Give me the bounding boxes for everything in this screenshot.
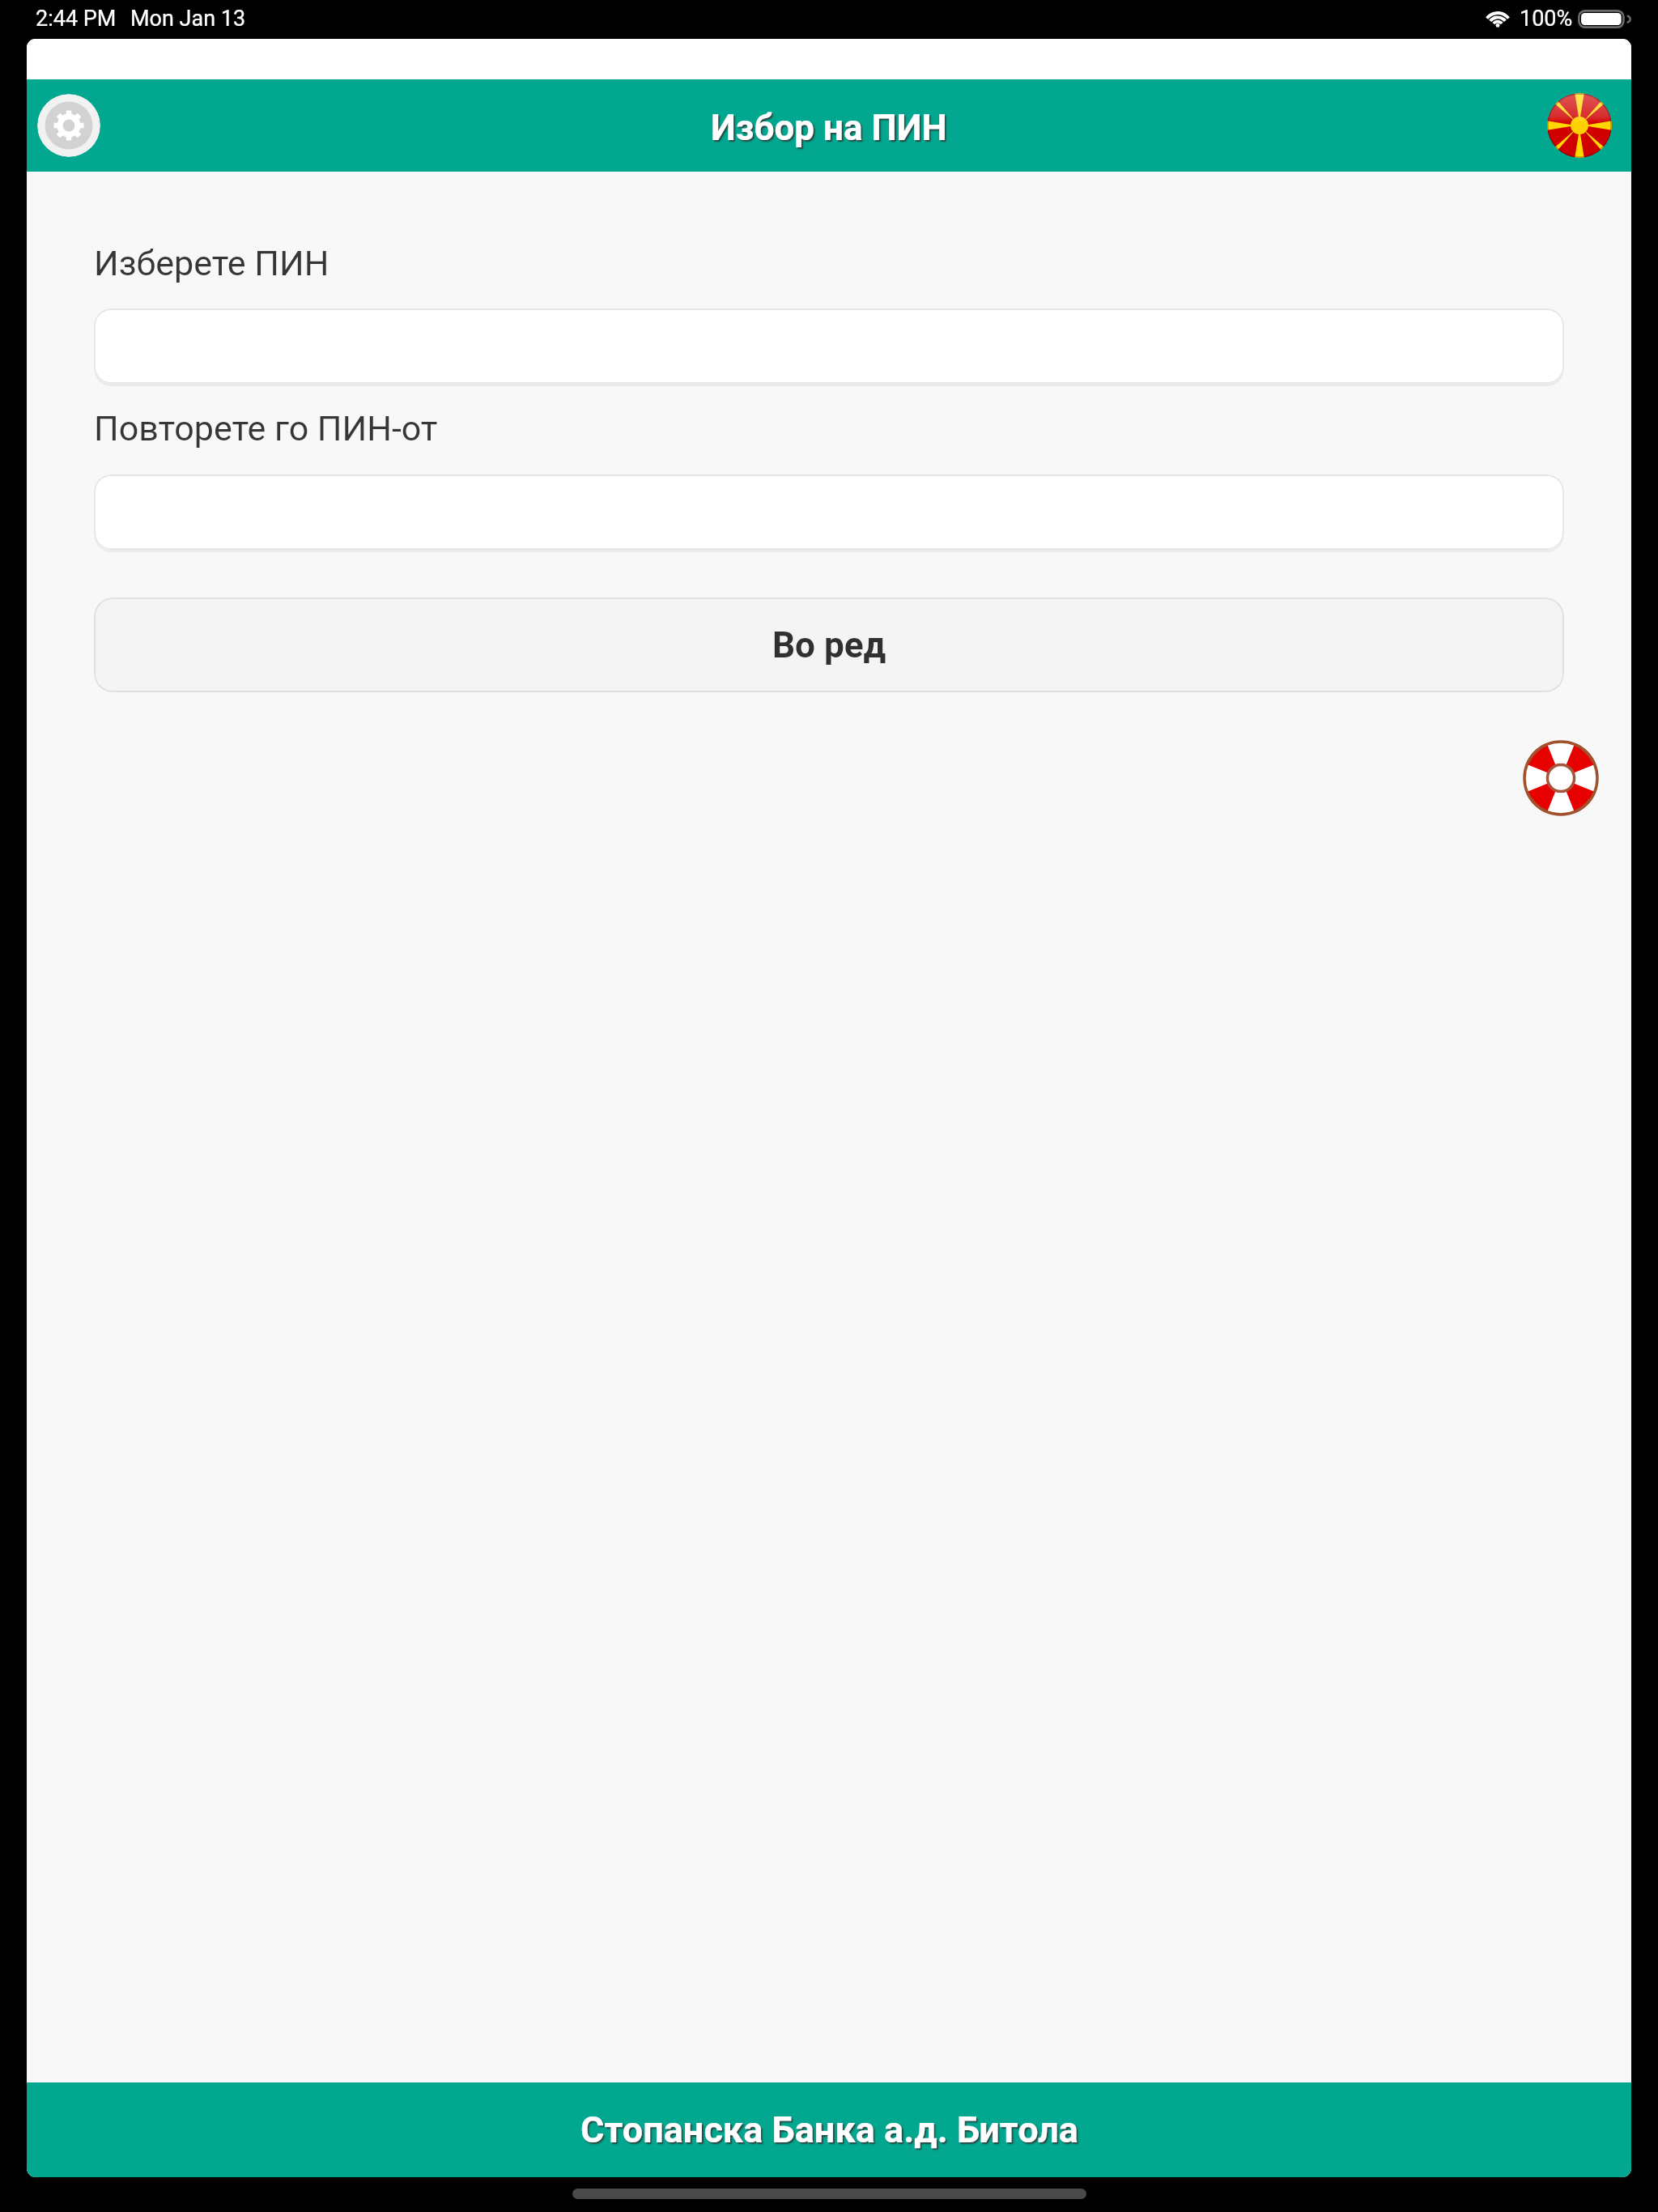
staticText: Избор на ПИН [711,107,947,149]
button[interactable]: Во ред [94,598,1564,692]
staticText: Изберете ПИН [94,243,329,283]
staticText: Во ред [772,624,886,666]
button[interactable] [94,308,1564,384]
staticText: 100% [1520,6,1573,32]
button[interactable]: Language [1547,93,1612,158]
staticText: 2:44 PM [36,6,117,32]
staticText: Mon Jan 13 [130,6,246,32]
button[interactable] [94,474,1564,550]
button[interactable]: Settings [37,94,100,157]
staticText: Повторете го ПИН-от [94,408,438,449]
button[interactable]: Help [1510,727,1612,829]
staticText: Стопанска Банка а.д. Битола [580,2108,1078,2151]
